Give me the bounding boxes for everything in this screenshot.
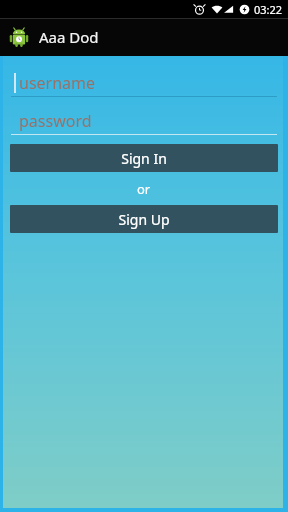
button[interactable]: password: [11, 107, 277, 135]
other: App icon: [8, 26, 30, 48]
staticText: password: [19, 110, 92, 132]
staticText: Sign In: [121, 149, 167, 168]
button[interactable]: username: [11, 69, 277, 97]
staticText: 03:22: [254, 2, 283, 17]
staticText: or: [137, 180, 151, 198]
staticText: Aaa Dod: [39, 27, 99, 47]
staticText: username: [19, 72, 96, 94]
button[interactable]: Sign Up: [10, 205, 278, 233]
button[interactable]: Sign In: [10, 144, 278, 172]
staticText: Sign Up: [118, 210, 170, 229]
